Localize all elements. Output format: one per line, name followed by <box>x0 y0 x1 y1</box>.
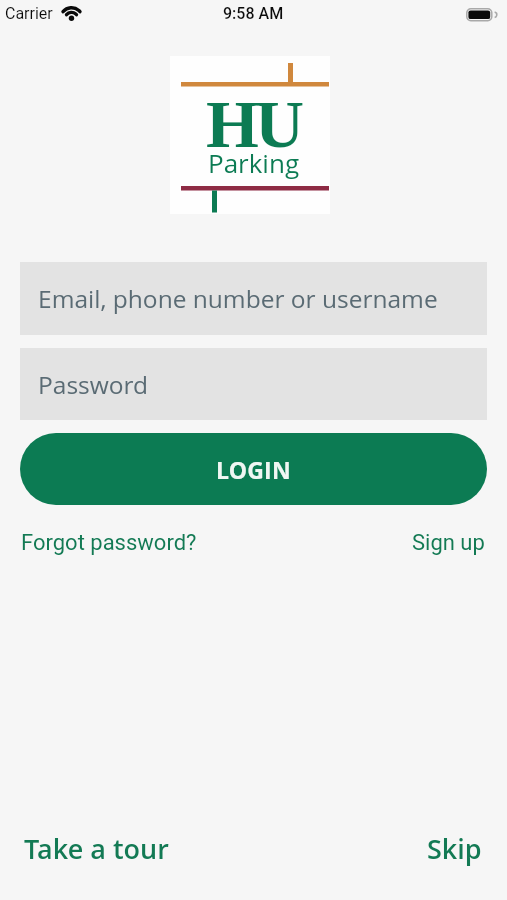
staticText: Password <box>38 368 149 401</box>
button[interactable]: Email, phone number or username <box>20 262 487 335</box>
staticText: LOGIN <box>216 454 291 485</box>
button[interactable]: Take a tour <box>24 830 169 867</box>
staticText: HU <box>208 86 302 161</box>
staticText: Parking <box>208 145 300 180</box>
button[interactable]: Sign up <box>412 530 485 556</box>
button[interactable]: LOGIN <box>20 433 487 505</box>
button[interactable]: Skip <box>427 830 482 867</box>
button[interactable]: Password <box>20 348 487 420</box>
staticText: Email, phone number or username <box>38 282 438 315</box>
staticText: 9:58 AM <box>223 4 284 23</box>
staticText: Carrier <box>5 4 53 23</box>
button[interactable]: Forgot password? <box>21 530 197 556</box>
